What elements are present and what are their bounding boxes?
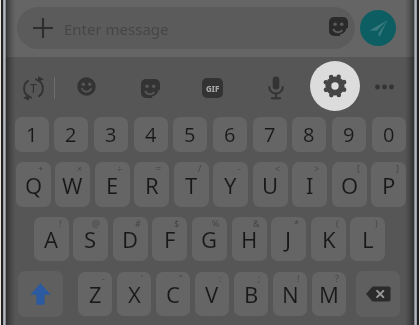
staticText: ! bbox=[59, 217, 62, 229]
button[interactable]: G bbox=[192, 217, 227, 261]
staticText: Q bbox=[25, 170, 43, 200]
button[interactable]: U bbox=[253, 162, 288, 207]
staticText: GIF bbox=[206, 83, 220, 94]
staticText: @ bbox=[92, 217, 101, 229]
button[interactable]: 9 bbox=[332, 117, 366, 152]
button[interactable]: 6 bbox=[213, 117, 247, 152]
staticText: # bbox=[135, 217, 141, 229]
button[interactable]: R bbox=[134, 162, 169, 207]
button[interactable]: 5 bbox=[173, 117, 207, 152]
button[interactable]: Y bbox=[213, 162, 248, 207]
staticText: > bbox=[314, 162, 320, 174]
button[interactable] bbox=[18, 271, 63, 317]
staticText: % bbox=[212, 217, 220, 229]
button[interactable]: B bbox=[234, 272, 268, 316]
button[interactable]: 1 bbox=[15, 117, 49, 152]
staticText: [ bbox=[357, 162, 360, 174]
button[interactable]: N bbox=[273, 272, 307, 316]
staticText: 0 bbox=[383, 121, 395, 148]
staticText: H bbox=[241, 224, 258, 254]
button[interactable]: L bbox=[350, 217, 385, 261]
staticText: & bbox=[253, 217, 260, 229]
staticText: G bbox=[201, 224, 218, 254]
button[interactable] bbox=[141, 79, 160, 98]
button[interactable] bbox=[360, 10, 396, 46]
staticText: B bbox=[244, 279, 259, 309]
button[interactable]: J bbox=[271, 217, 306, 261]
staticText: / bbox=[198, 162, 202, 174]
staticText: X bbox=[128, 279, 141, 309]
button[interactable]: O bbox=[332, 162, 367, 207]
staticText: 6 bbox=[224, 121, 236, 148]
button[interactable] bbox=[77, 77, 96, 96]
button[interactable] bbox=[374, 82, 395, 92]
staticText: 7 bbox=[264, 121, 276, 148]
button[interactable]: 0 bbox=[372, 117, 406, 152]
button[interactable]: I bbox=[292, 162, 327, 207]
button[interactable] bbox=[310, 61, 360, 111]
button[interactable]: E bbox=[95, 162, 130, 207]
button[interactable]: F bbox=[152, 217, 187, 261]
staticText: I bbox=[306, 170, 314, 200]
staticText: N bbox=[282, 279, 299, 309]
staticText: R bbox=[145, 170, 159, 200]
button[interactable]: P bbox=[371, 162, 406, 207]
button[interactable]: M bbox=[312, 272, 346, 316]
staticText: K bbox=[322, 224, 336, 254]
staticText: ] bbox=[396, 162, 399, 174]
staticText: C bbox=[166, 279, 180, 309]
staticText: S bbox=[84, 224, 97, 254]
staticText: A bbox=[44, 224, 59, 254]
button[interactable]: 8 bbox=[292, 117, 326, 152]
staticText: V bbox=[205, 279, 219, 309]
staticText: M bbox=[319, 279, 339, 309]
staticText: W bbox=[62, 170, 83, 200]
staticText: P bbox=[382, 170, 396, 200]
staticText: + bbox=[38, 162, 44, 174]
staticText: $ bbox=[174, 217, 180, 229]
staticText: : bbox=[219, 272, 222, 284]
button[interactable]: V bbox=[195, 272, 229, 316]
button[interactable]: X bbox=[117, 272, 151, 316]
staticText: * bbox=[294, 217, 299, 229]
button[interactable]: H bbox=[232, 217, 267, 261]
button[interactable] bbox=[17, 7, 355, 49]
staticText: 9 bbox=[343, 121, 355, 148]
button[interactable] bbox=[356, 271, 400, 317]
button[interactable]: 4 bbox=[134, 117, 168, 152]
staticText: U bbox=[262, 170, 279, 200]
button[interactable]: C bbox=[156, 272, 190, 316]
button[interactable]: D bbox=[113, 217, 148, 261]
button[interactable]: Z bbox=[78, 272, 112, 316]
button[interactable]: 2 bbox=[54, 117, 88, 152]
staticText: E bbox=[106, 170, 119, 200]
staticText: - bbox=[102, 272, 105, 284]
staticText: ( bbox=[336, 217, 339, 229]
button[interactable]: T bbox=[174, 162, 209, 207]
staticText: = bbox=[156, 162, 162, 174]
button[interactable] bbox=[267, 76, 285, 101]
staticText: D bbox=[122, 224, 139, 254]
button[interactable]: K bbox=[311, 217, 346, 261]
staticText: ? bbox=[335, 272, 339, 284]
button[interactable]: A bbox=[34, 217, 69, 261]
staticText: " bbox=[179, 272, 183, 284]
staticText: F bbox=[164, 224, 176, 254]
button[interactable]: W bbox=[55, 162, 90, 207]
staticText: J bbox=[285, 224, 292, 254]
button[interactable]: Q bbox=[16, 162, 51, 207]
button[interactable]: S bbox=[73, 217, 108, 261]
staticText: - bbox=[238, 162, 241, 174]
button[interactable] bbox=[329, 17, 348, 36]
staticText: Z bbox=[89, 279, 102, 309]
staticText: ) bbox=[375, 217, 378, 229]
button[interactable]: T bbox=[21, 76, 46, 101]
staticText: 2 bbox=[65, 121, 77, 148]
button[interactable]: 3 bbox=[94, 117, 128, 152]
staticText: 1 bbox=[26, 121, 38, 148]
staticText: ! bbox=[297, 272, 300, 284]
staticText: ÷ bbox=[117, 162, 123, 174]
button[interactable]: 7 bbox=[253, 117, 287, 152]
staticText: 3 bbox=[105, 121, 117, 148]
button[interactable]: GIF bbox=[202, 78, 223, 98]
